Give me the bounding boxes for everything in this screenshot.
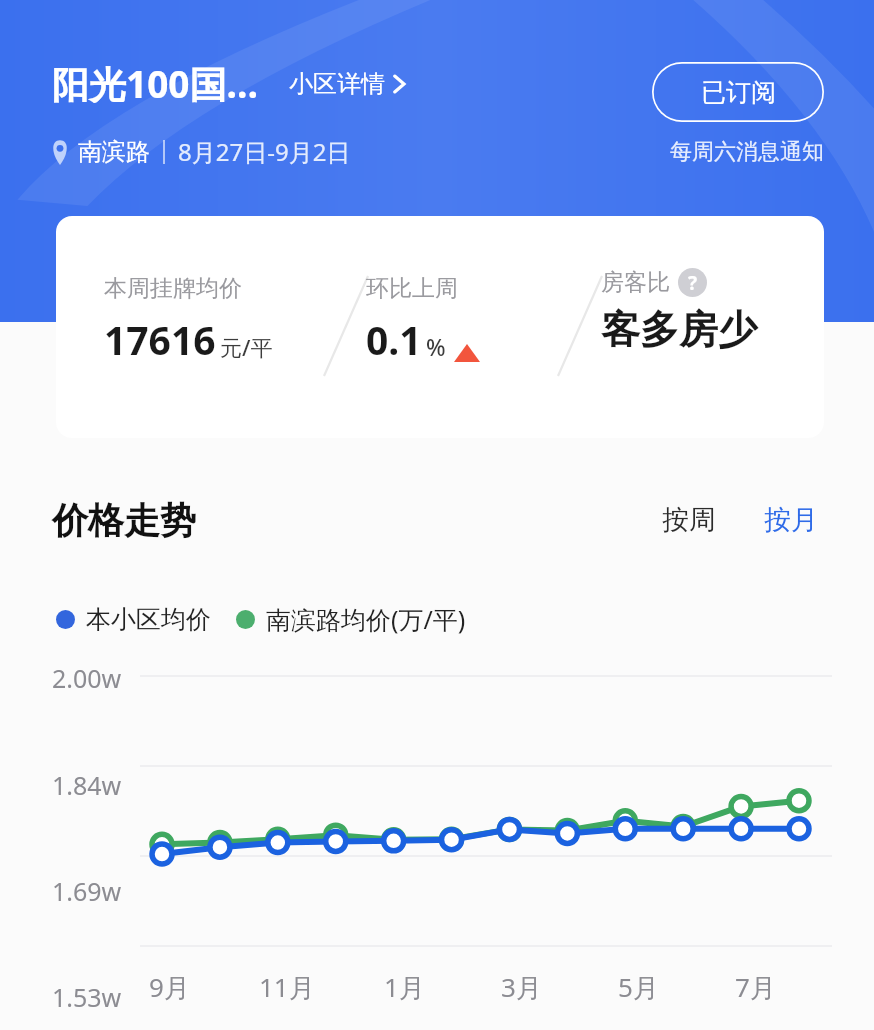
button[interactable]: 按月	[756, 495, 826, 545]
staticText: 11月	[259, 969, 315, 1005]
staticText: 元/平	[220, 332, 273, 362]
staticText: 17616	[104, 313, 216, 366]
button[interactable]: 按周	[654, 495, 724, 545]
staticText: 客多房少	[601, 305, 757, 354]
staticText: 2.00w	[52, 661, 122, 695]
staticText: 本小区均价	[86, 604, 211, 635]
button[interactable]: 小区详情	[285, 63, 411, 105]
staticText: 8月27日-9月2日	[178, 135, 351, 168]
staticText: 本周挂牌均价	[104, 274, 242, 303]
staticText: 小区详情	[289, 69, 385, 99]
staticText: 3月	[501, 969, 542, 1005]
staticText: 已订阅	[701, 77, 776, 108]
staticText: 9月	[149, 969, 190, 1005]
staticText: 7月	[735, 969, 776, 1005]
staticText: 5月	[618, 969, 659, 1005]
staticText: 房客比	[601, 268, 670, 297]
staticText: 1月	[384, 969, 425, 1005]
staticText: 1.84w	[52, 768, 122, 802]
staticText: 南滨路均价(万/平)	[266, 602, 466, 636]
staticText: 0.1	[366, 313, 422, 366]
staticText: 每周六消息通知	[670, 138, 824, 166]
button[interactable]: 本周挂牌均价	[56, 216, 824, 438]
staticText: 1.53w	[52, 980, 122, 1014]
button[interactable]: 说明	[678, 268, 707, 297]
staticText: 环比上周	[366, 274, 458, 303]
staticText: ?	[688, 270, 698, 296]
staticText: 按周	[662, 503, 716, 537]
staticText: 南滨路	[78, 137, 150, 167]
button[interactable]: 已订阅	[652, 62, 824, 122]
staticText: 阳光100国…	[52, 58, 259, 109]
staticText: 价格走势	[52, 498, 196, 543]
staticText: %	[426, 331, 446, 362]
staticText: 1.69w	[52, 874, 122, 908]
staticText: 按月	[764, 503, 818, 537]
